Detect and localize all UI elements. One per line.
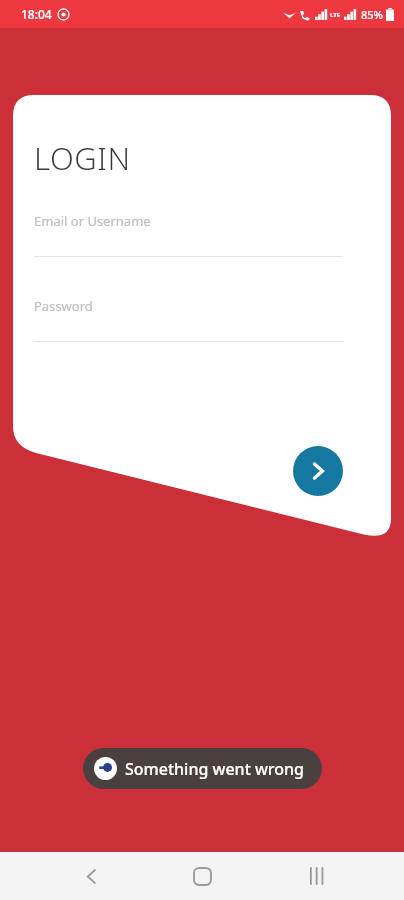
button[interactable]: Home	[172, 852, 232, 900]
button[interactable]: Continue	[293, 446, 343, 496]
button[interactable]: Email or Username	[34, 212, 343, 257]
staticText: LTE	[330, 11, 341, 19]
staticText: Email or Username	[34, 212, 151, 230]
staticText: 18:04	[21, 6, 52, 22]
button[interactable]: Password	[34, 297, 343, 342]
staticText: 85%	[361, 7, 383, 22]
staticText: LOGIN	[34, 137, 131, 179]
button[interactable]: Back	[61, 852, 121, 900]
button[interactable]: Recent apps	[286, 852, 346, 900]
staticText: Password	[34, 297, 93, 315]
staticText: Something went wrong	[125, 758, 305, 780]
